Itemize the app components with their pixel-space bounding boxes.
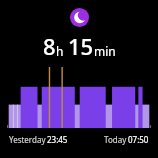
- staticText: Today: [104, 134, 127, 145]
- button[interactable]: Sleep: [70, 8, 89, 27]
- staticText: h: [56, 43, 64, 59]
- button[interactable]: Today: [104, 134, 149, 145]
- staticText: Yesterday: [9, 134, 46, 145]
- staticText: 23:45: [47, 134, 68, 145]
- button[interactable]: 8: [43, 31, 116, 61]
- button[interactable]: Yesterday: [9, 134, 68, 145]
- staticText: 07:50: [128, 134, 149, 145]
- button[interactable]: [0, 65, 158, 131]
- staticText: 8: [43, 31, 56, 61]
- staticText: 15: [68, 31, 94, 61]
- staticText: min: [94, 43, 116, 59]
